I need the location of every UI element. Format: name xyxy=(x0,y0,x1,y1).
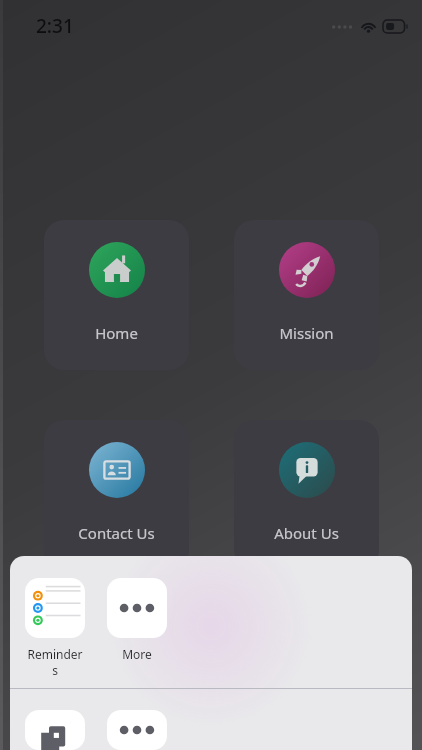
staticText: Mission xyxy=(279,323,334,343)
button[interactable]: Contact Us xyxy=(44,420,189,570)
staticText: Reminders xyxy=(25,646,85,678)
button[interactable]: More xyxy=(107,578,167,662)
staticText: 2:31 xyxy=(36,13,74,39)
staticText: Contact Us xyxy=(78,523,155,543)
button[interactable]: Mission xyxy=(234,220,379,370)
button[interactable]: Home xyxy=(44,220,189,370)
staticText: Home xyxy=(95,323,138,343)
button[interactable]: Reminders xyxy=(25,578,85,678)
staticText: About Us xyxy=(274,523,339,543)
other: Home xyxy=(89,242,145,298)
button[interactable]: About Us xyxy=(234,420,379,570)
other: About Us xyxy=(279,442,335,498)
other: Mission xyxy=(279,242,335,298)
staticText: More xyxy=(122,646,152,662)
button[interactable]: Copy xyxy=(25,710,85,750)
button[interactable]: More xyxy=(107,710,167,750)
other: Contact Us xyxy=(89,442,145,498)
